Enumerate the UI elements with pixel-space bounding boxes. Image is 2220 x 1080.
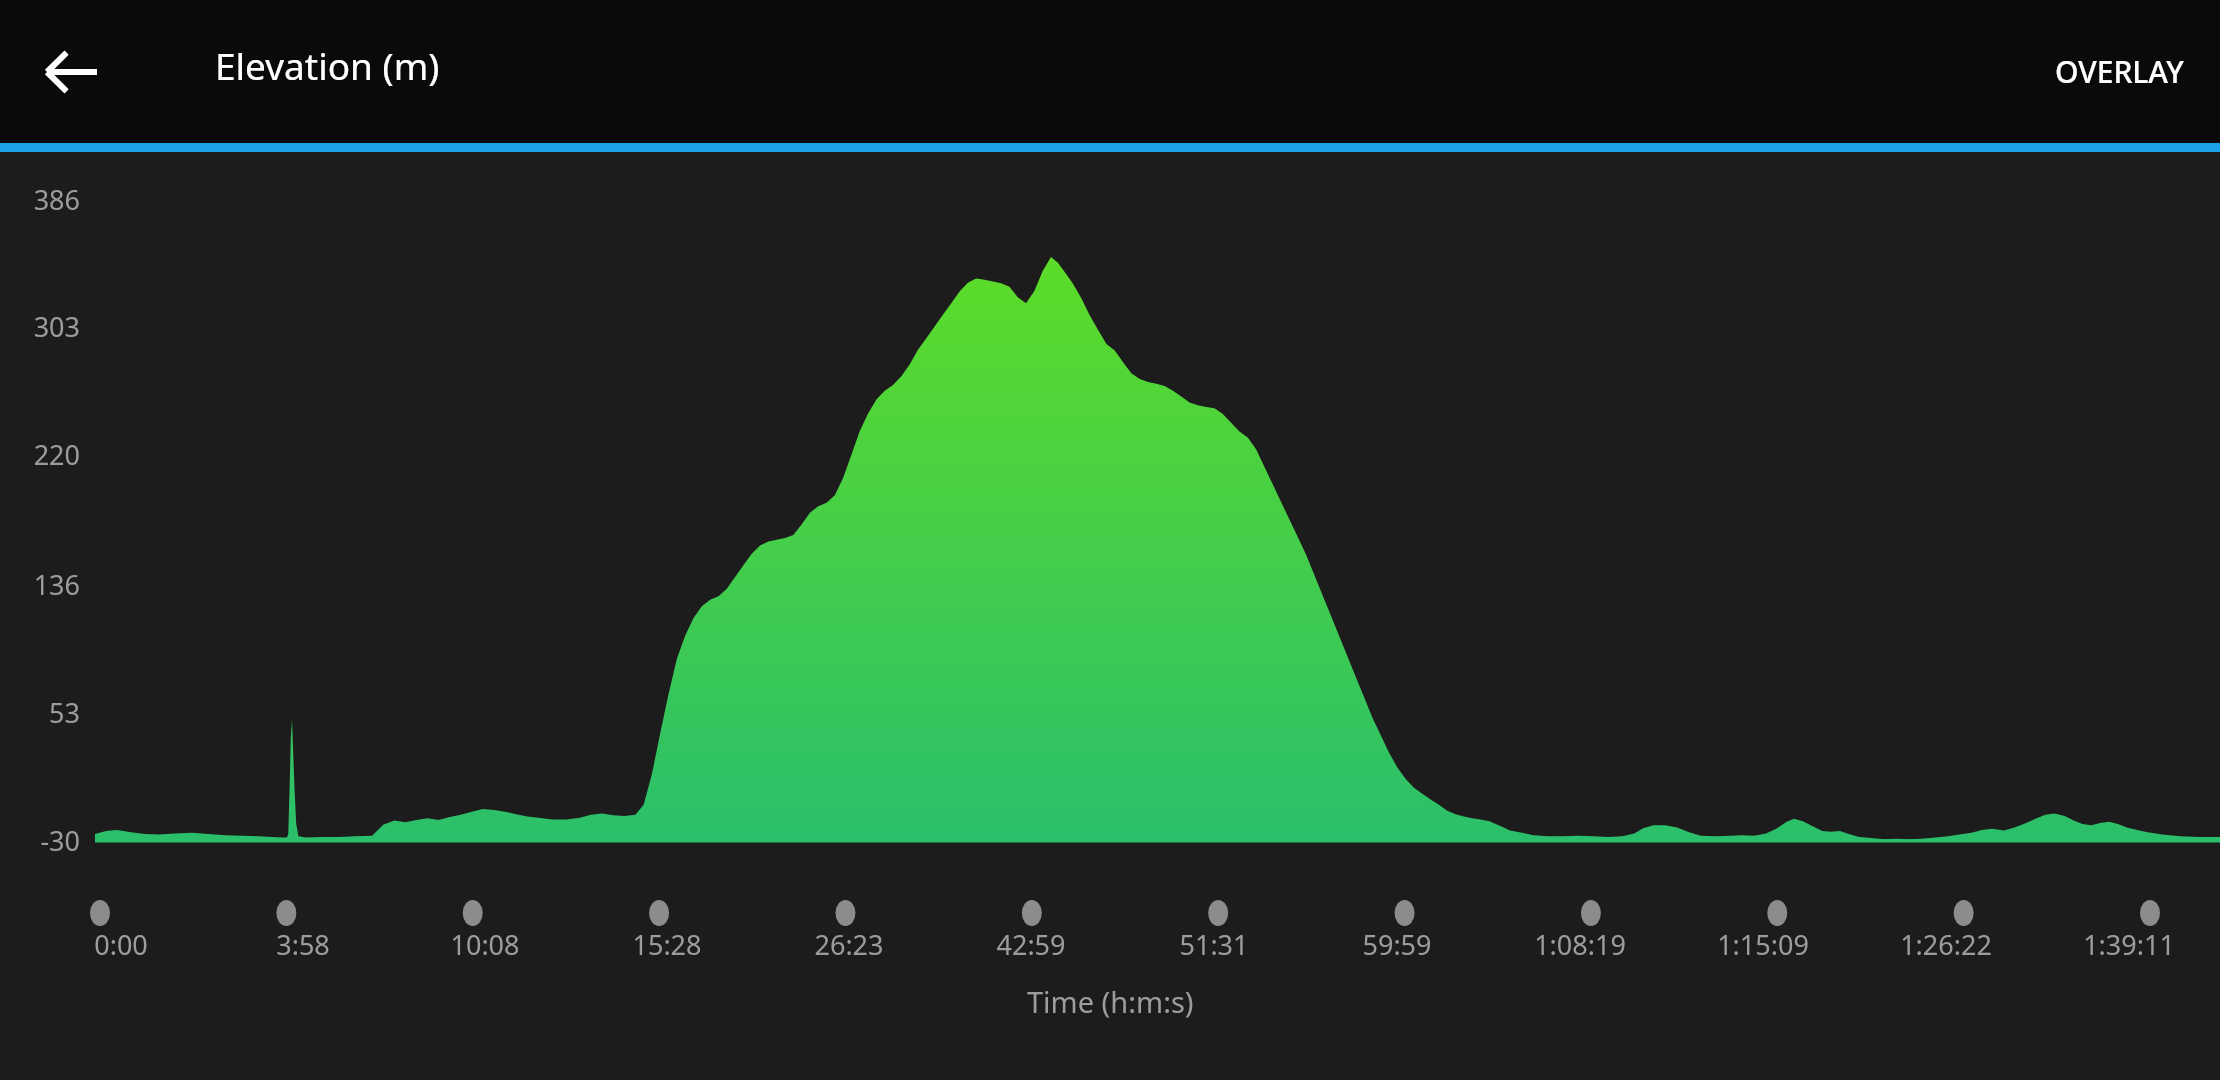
staticText: 15:28 — [632, 926, 702, 963]
staticText: 10:08 — [450, 926, 520, 963]
staticText: 53 — [0, 694, 80, 731]
button[interactable]: Elevation (m) — [215, 40, 440, 90]
staticText: 220 — [0, 436, 80, 473]
staticText: 26:23 — [814, 926, 884, 963]
staticText: 386 — [0, 181, 80, 218]
staticText: OVERLAY — [2055, 51, 2184, 92]
staticText: 1:26:22 — [1900, 926, 1992, 963]
staticText: 3:58 — [276, 926, 330, 963]
staticText: 51:31 — [1179, 926, 1249, 963]
staticText: Time (h:m:s) — [1027, 982, 1194, 1021]
staticText: -30 — [0, 822, 80, 859]
staticText: 0:00 — [94, 926, 148, 963]
staticText: 59:59 — [1362, 926, 1432, 963]
button[interactable]: OVERLAY — [2019, 25, 2220, 118]
staticText: 1:08:19 — [1534, 926, 1626, 963]
staticText: 1:15:09 — [1717, 926, 1809, 963]
staticText: Elevation (m) — [215, 40, 440, 90]
staticText: 1:39:11 — [2083, 926, 2175, 963]
staticText: 303 — [0, 308, 80, 345]
staticText: 42:59 — [996, 926, 1066, 963]
button[interactable]: Back — [32, 38, 112, 106]
staticText: 136 — [0, 566, 80, 603]
